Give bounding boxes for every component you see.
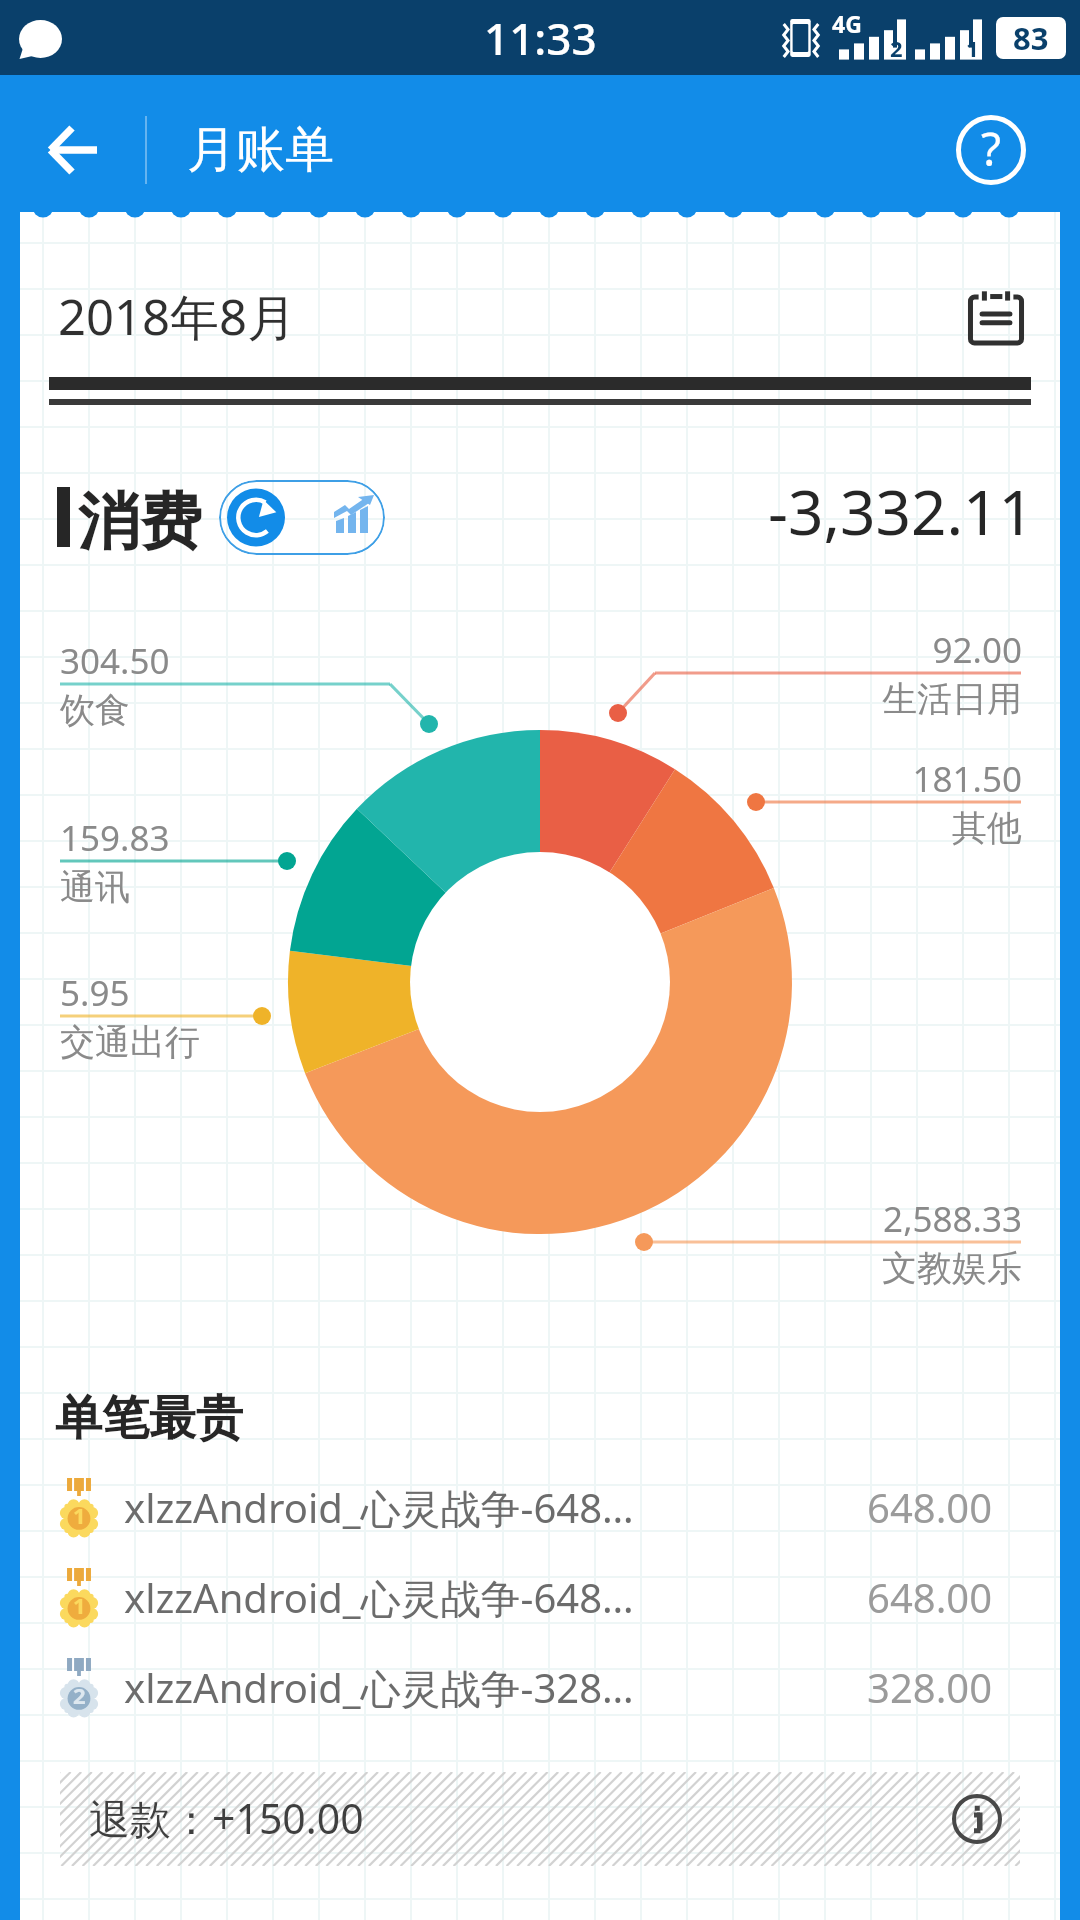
staticText: 消费 — [78, 483, 202, 561]
button[interactable]: 1 — [0, 1552, 1080, 1642]
other: Info — [952, 1794, 1002, 1844]
staticText: 2,588.33 — [700, 1195, 1022, 1243]
staticText: 通讯 — [60, 865, 130, 909]
staticText: -3,332.11 — [600, 469, 1034, 553]
staticText: 648.00 — [867, 1570, 993, 1624]
staticText: 交通出行 — [60, 1020, 200, 1064]
staticText: 生活日用 — [700, 677, 1022, 721]
staticText: 2 — [890, 33, 903, 63]
staticText: 饮食 — [60, 688, 130, 732]
staticText: 单笔最贵 — [55, 1389, 243, 1448]
staticText: 月账单 — [187, 119, 334, 181]
staticText: 其他 — [700, 806, 1022, 850]
staticText: 1 — [73, 1590, 86, 1620]
staticText: 文教娱乐 — [700, 1246, 1022, 1290]
button[interactable]: 2 — [0, 1642, 1080, 1732]
staticText: xlzzAndroid_心灵战争-328… — [124, 1660, 634, 1715]
staticText: 92.00 — [700, 626, 1022, 674]
button[interactable]: Bill list — [962, 284, 1030, 352]
button[interactable]: 1 — [0, 1462, 1080, 1552]
staticText: 退款：+150.00 — [89, 1790, 364, 1846]
staticText: 181.50 — [700, 755, 1022, 803]
staticText: xlzzAndroid_心灵战争-648… — [124, 1480, 634, 1535]
staticText: 11:33 — [484, 8, 597, 68]
staticText: 4G — [832, 8, 862, 39]
staticText: ? — [981, 117, 1001, 180]
staticText: 1 — [73, 1500, 86, 1530]
staticText: 2018年8月 — [58, 283, 297, 350]
button[interactable]: Back — [0, 81, 145, 218]
button[interactable]: 退款：+150.00 — [60, 1772, 1020, 1866]
staticText: xlzzAndroid_心灵战争-648… — [124, 1570, 634, 1625]
button[interactable]: Chart view toggle — [219, 480, 385, 555]
staticText: 328.00 — [867, 1660, 993, 1714]
staticText: 304.50 — [60, 637, 170, 685]
button[interactable]: Help — [926, 85, 1056, 215]
staticText: 159.83 — [60, 814, 170, 862]
staticText: 1 — [966, 33, 979, 63]
staticText: 648.00 — [867, 1480, 993, 1534]
staticText: 2 — [73, 1680, 86, 1710]
staticText: 5.95 — [60, 969, 130, 1017]
staticText: 83 — [1013, 17, 1049, 59]
